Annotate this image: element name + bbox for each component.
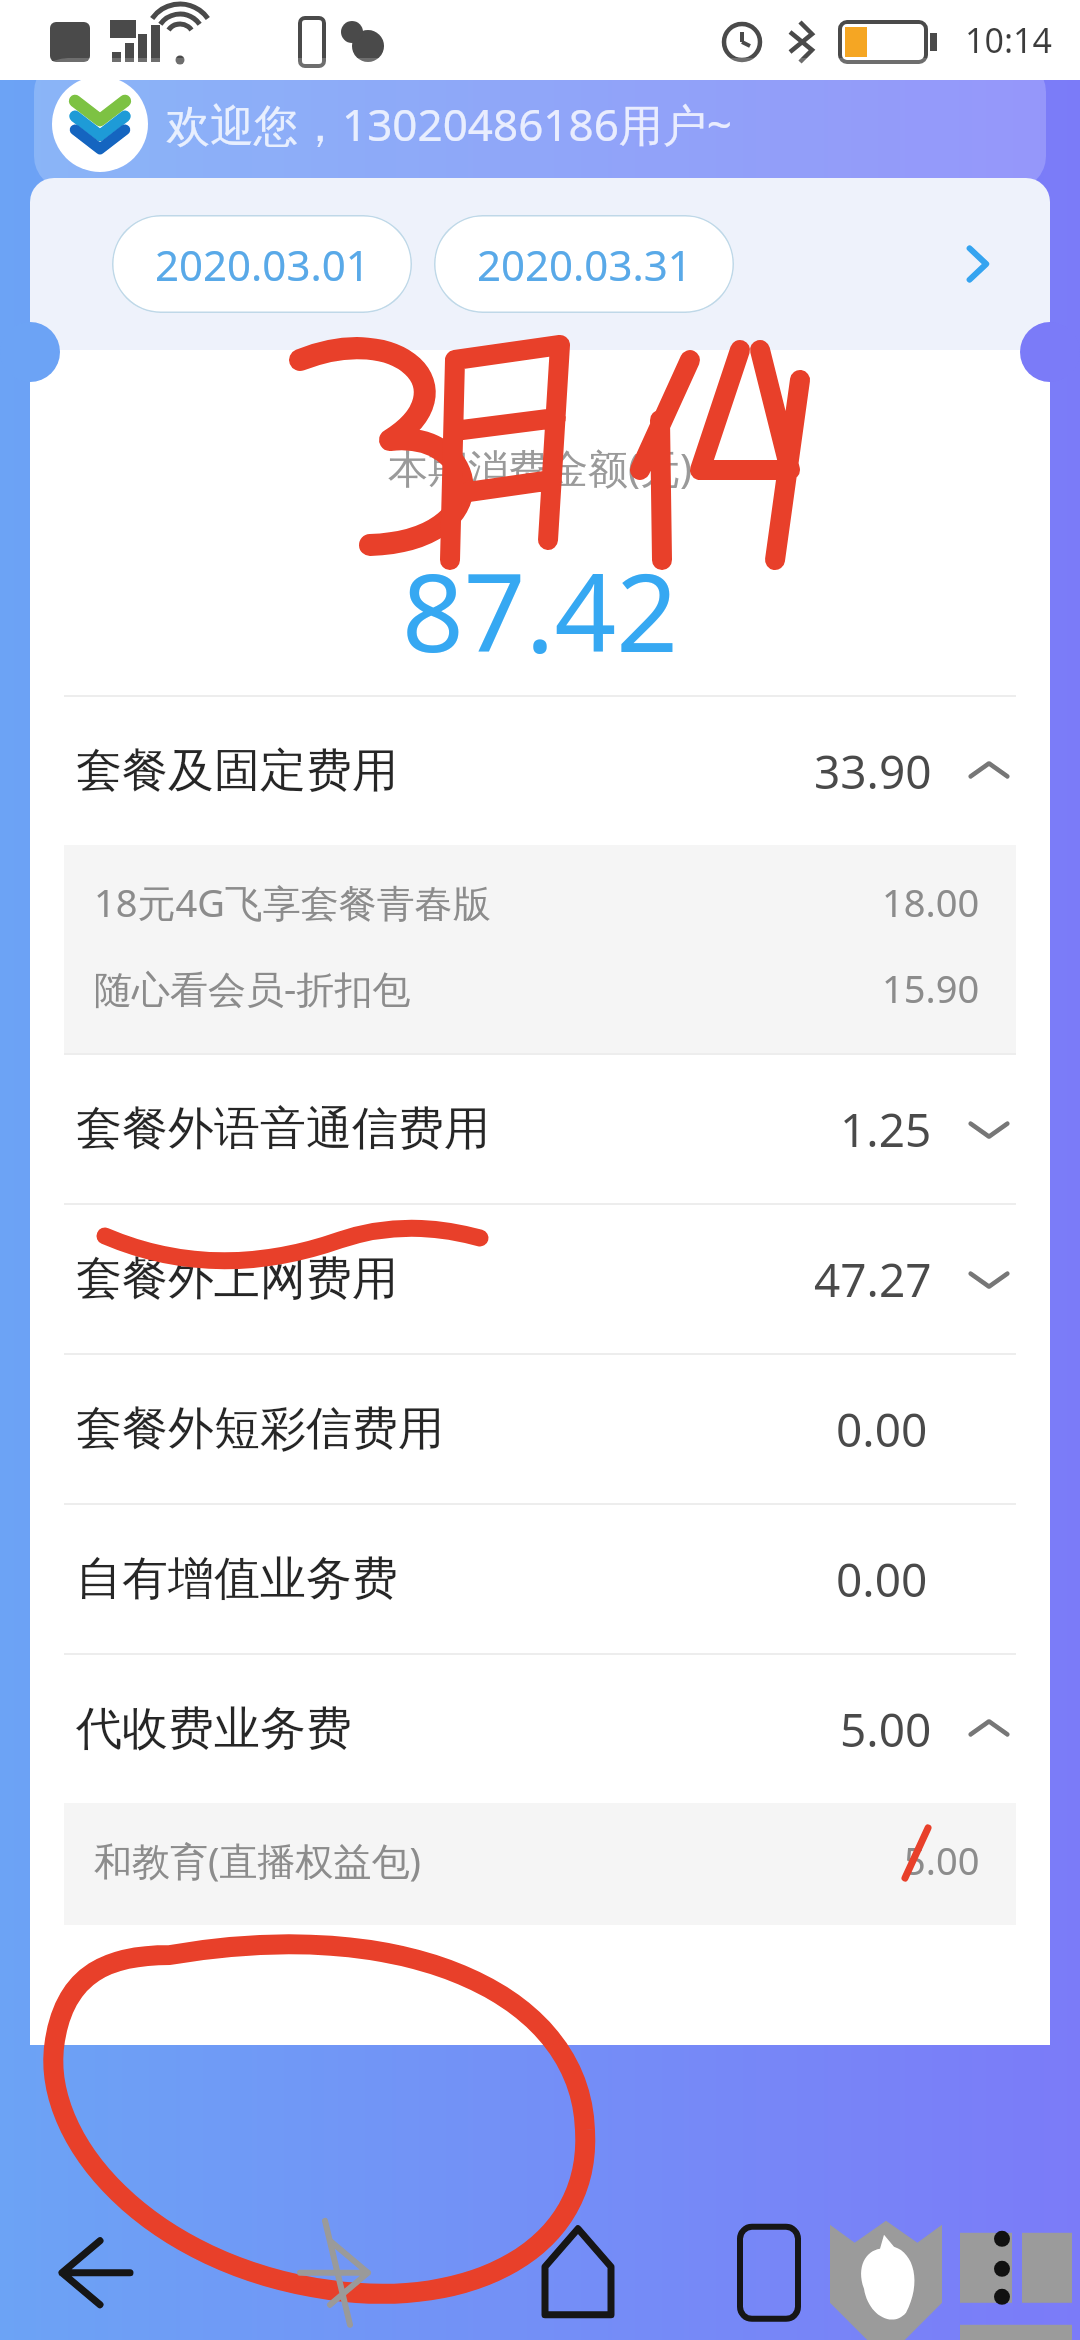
staticText: 套餐及固定费用 xyxy=(76,742,398,800)
staticText: 2020.03.31 xyxy=(477,236,692,293)
staticText: 代收费业务费 xyxy=(76,1700,352,1758)
button[interactable]: 自有增值业务费 xyxy=(30,1505,1050,1653)
staticText: 和教育(直播权益包) xyxy=(94,1834,421,1886)
staticText: 33.90 xyxy=(814,740,932,803)
staticText: 套餐外语音通信费用 xyxy=(76,1100,490,1158)
staticText: 5.00 xyxy=(840,1698,932,1761)
button[interactable]: 套餐及固定费用 xyxy=(30,697,1050,845)
staticText: 套餐外上网费用 xyxy=(76,1250,398,1308)
staticText: 10:14 xyxy=(965,17,1052,63)
staticText: 15.90 xyxy=(882,962,980,1014)
staticText: 随心看会员-折扣包 xyxy=(94,962,411,1014)
button[interactable]: 套餐外上网费用 xyxy=(30,1205,1050,1353)
staticText: 18元4G飞享套餐青春版 xyxy=(94,876,491,928)
button[interactable]: 和教育(直播权益包) xyxy=(64,1817,1016,1903)
button[interactable]: 套餐外短彩信费用 xyxy=(30,1355,1050,1503)
button[interactable]: 18元4G飞享套餐青春版 xyxy=(64,859,1016,945)
button[interactable]: 欢迎您，13020486186用户~ xyxy=(34,58,1046,190)
button[interactable]: 随心看会员-折扣包 xyxy=(64,945,1016,1031)
staticText: 套餐外短彩信费用 xyxy=(76,1400,444,1458)
button[interactable]: 2020.03.31 xyxy=(434,215,734,313)
staticText: 87.42 xyxy=(402,537,679,684)
staticText: 5.00 xyxy=(904,1834,980,1886)
button[interactable]: Next xyxy=(934,221,1020,307)
button[interactable]: 套餐外语音通信费用 xyxy=(30,1055,1050,1203)
staticText: 2020.03.01 xyxy=(155,236,370,293)
staticText: 18.00 xyxy=(882,876,980,928)
button[interactable]: 代收费业务费 xyxy=(30,1655,1050,1803)
staticText: 欢迎您，13020486186用户~ xyxy=(166,94,733,154)
button[interactable]: 2020.03.01 xyxy=(112,215,412,313)
staticText: 自有增值业务费 xyxy=(76,1550,398,1608)
staticText: 0.00 xyxy=(836,1548,928,1611)
staticText: 1.25 xyxy=(840,1098,932,1161)
staticText: 0.00 xyxy=(836,1398,928,1461)
button[interactable]: Recents xyxy=(485,2215,595,2325)
staticText: 本期消费金额(元) xyxy=(388,440,692,495)
button[interactable]: Home xyxy=(645,2215,755,2325)
button[interactable]: Back xyxy=(50,2215,160,2325)
staticText: 47.27 xyxy=(814,1248,932,1311)
